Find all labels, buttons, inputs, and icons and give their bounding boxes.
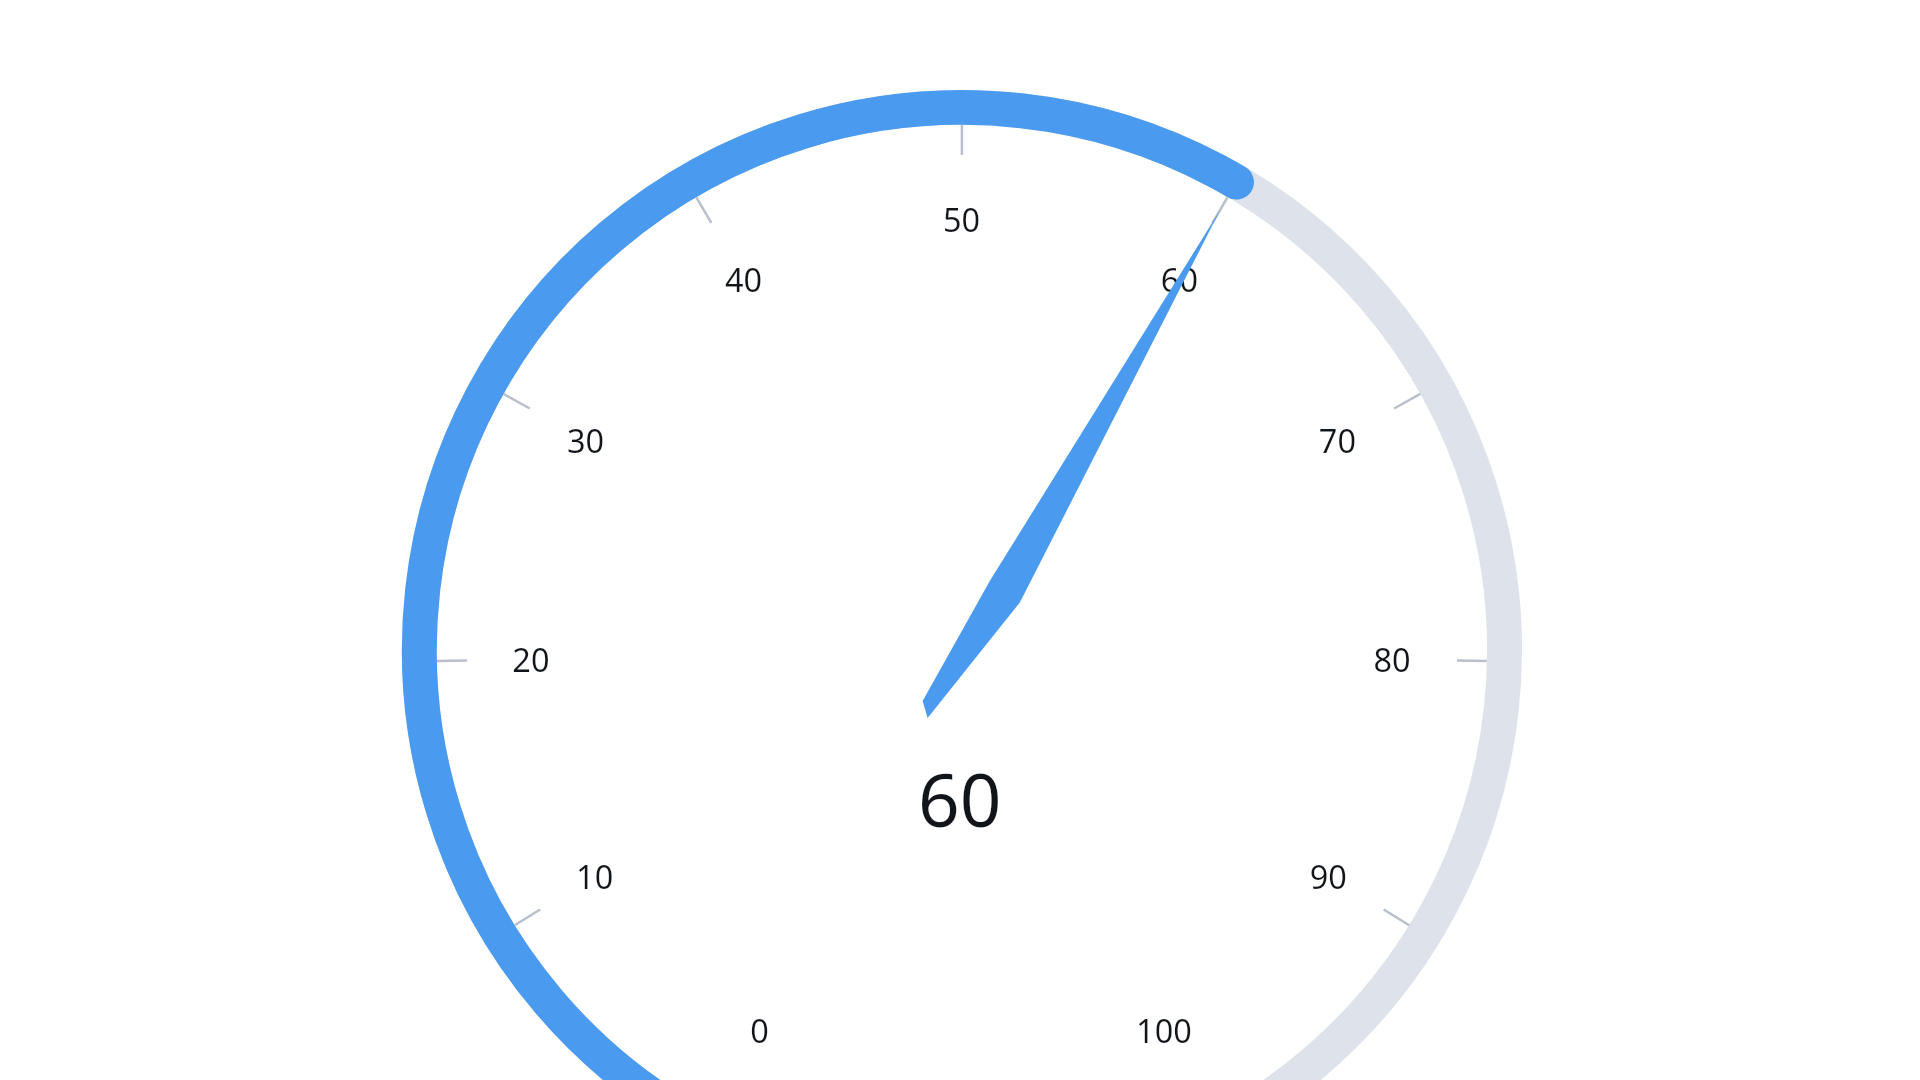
button[interactable]: Gauge showing 60 out of 100 [0, 0, 1920, 1080]
